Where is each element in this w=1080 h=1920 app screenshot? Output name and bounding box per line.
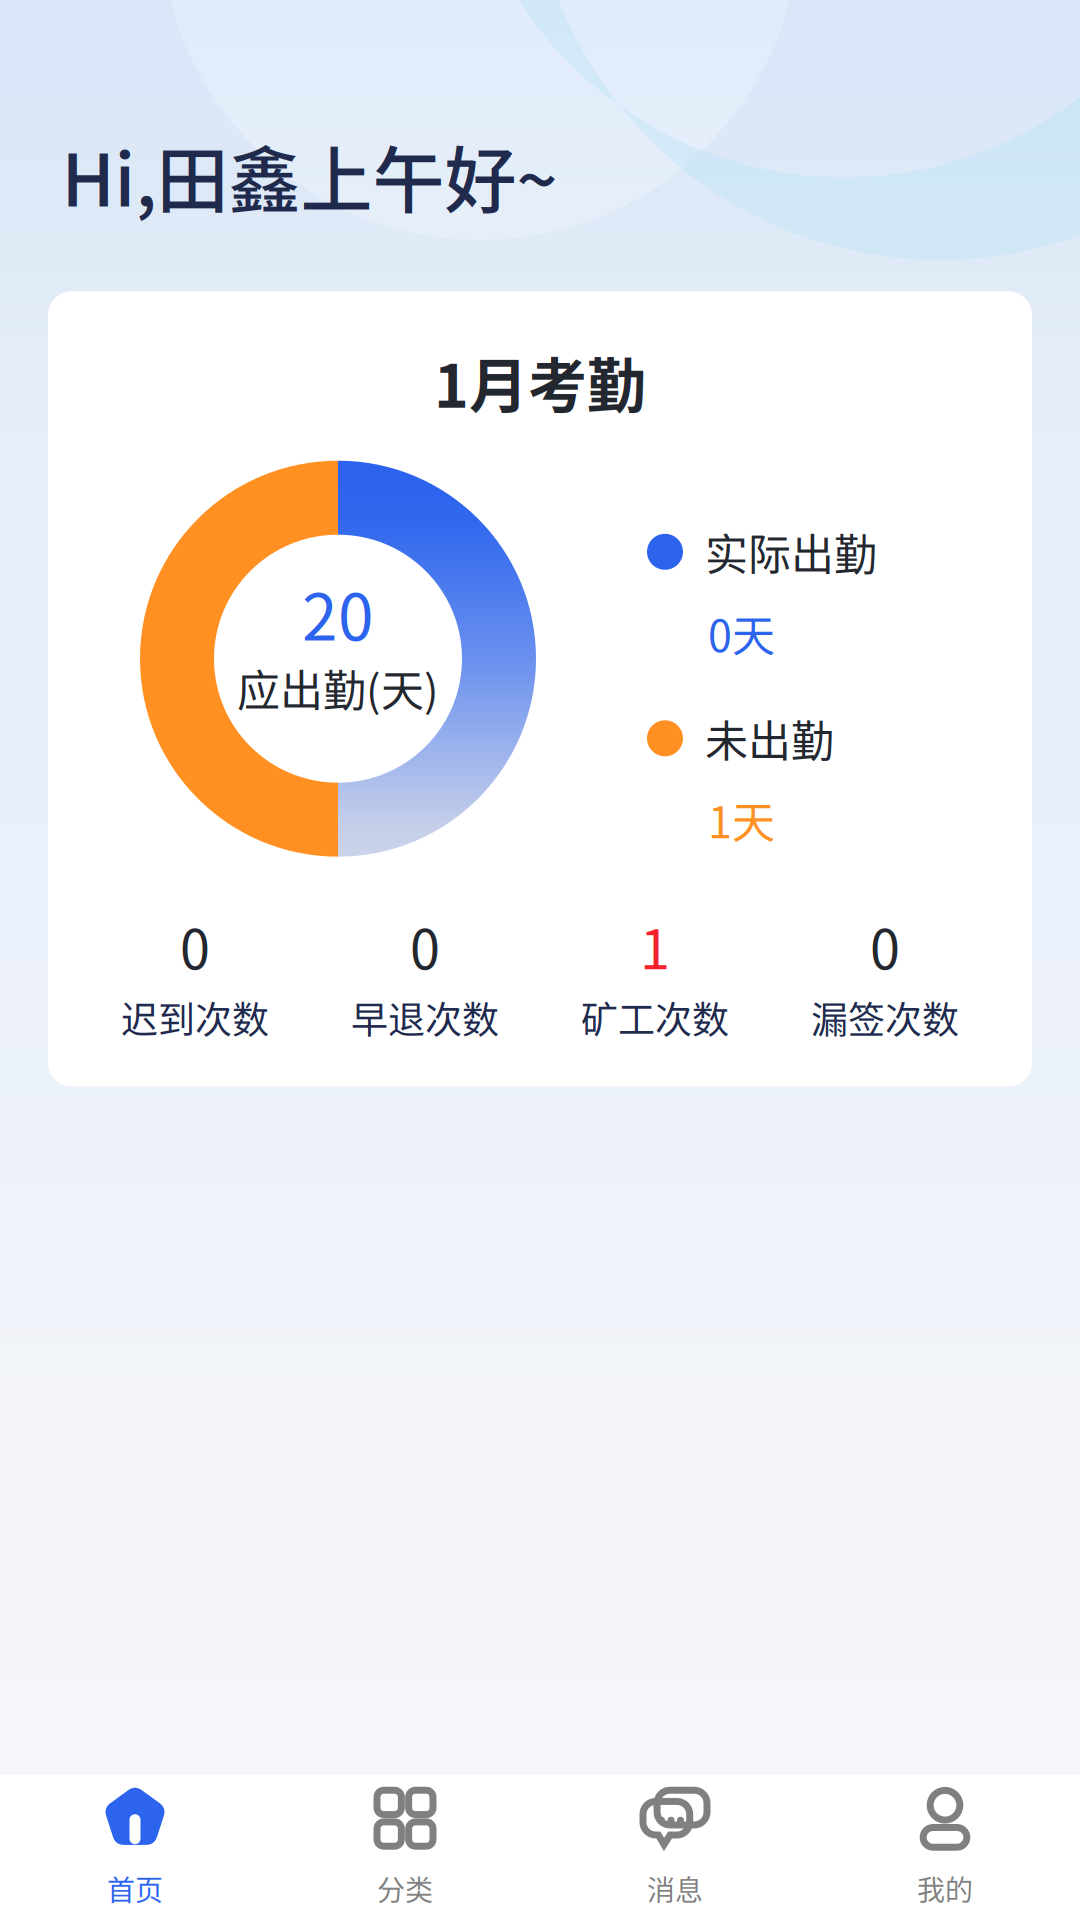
staticText: 0 [870,907,900,985]
staticText: 20 [302,566,374,659]
staticText: 未出勤 [705,707,834,769]
staticText: 实际出勤 [705,521,877,583]
staticText: 分类 [377,1868,433,1909]
staticText: 1月考勤 [434,339,646,425]
staticText: 消息 [647,1868,703,1909]
staticText: 矿工次数 [581,991,729,1044]
staticText: 首页 [107,1868,163,1909]
button[interactable]: 分类 [270,1782,540,1909]
staticText: 早退次数 [351,991,499,1044]
staticText: 我的 [917,1868,973,1909]
staticText: 1 [640,907,670,985]
staticText: 应出勤(天) [237,657,439,719]
button[interactable]: 消息 [540,1782,810,1909]
staticText: 1天 [708,788,775,851]
staticText: Hi,田鑫上午好~ [61,123,557,227]
button[interactable]: 我的 [810,1782,1080,1909]
staticText: 0天 [708,602,775,664]
button[interactable]: 首页 [0,1782,270,1909]
staticText: 迟到次数 [121,991,269,1044]
staticText: 0 [180,907,210,985]
staticText: 0 [410,907,440,985]
staticText: 漏签次数 [811,991,959,1044]
